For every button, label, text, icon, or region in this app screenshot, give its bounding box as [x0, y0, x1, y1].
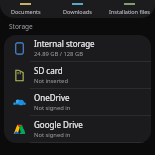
- staticText: Not signed in: [34, 104, 71, 112]
- staticText: Google Drive: [34, 119, 83, 130]
- other: Google Drive: [13, 123, 26, 136]
- button[interactable]: Documents: [0, 3, 51, 18]
- staticText: Internal storage: [34, 38, 95, 49]
- staticText: OneDrive: [34, 92, 70, 103]
- button[interactable]: Google Drive: [4, 116, 151, 142]
- other: SD card: [13, 69, 26, 82]
- button[interactable]: SD card: [4, 62, 151, 88]
- button[interactable]: Internal storage: [4, 35, 151, 61]
- other: OneDrive: [13, 96, 26, 109]
- staticText: Installation files: [109, 8, 150, 15]
- staticText: Not inserted: [34, 77, 68, 85]
- other: Internal storage: [13, 42, 26, 55]
- button[interactable]: Downloads: [51, 3, 103, 18]
- button[interactable]: OneDrive: [4, 89, 151, 115]
- staticText: Storage: [9, 22, 33, 31]
- button[interactable]: Installation files: [103, 3, 155, 18]
- staticText: 24.89 GB / 128 GB: [34, 50, 83, 58]
- staticText: Documents: [11, 8, 41, 15]
- staticText: SD card: [34, 65, 63, 76]
- staticText: Downloads: [63, 8, 92, 15]
- staticText: Not signed in: [34, 131, 71, 139]
